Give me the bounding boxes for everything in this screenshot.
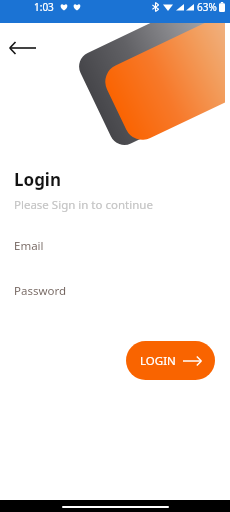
staticText: Password (14, 283, 67, 299)
staticText: 1:03 (34, 0, 54, 14)
button[interactable]: LOGIN (126, 341, 215, 380)
staticText: LOGIN (140, 353, 176, 369)
staticText: Email (14, 238, 44, 254)
staticText: 63% (197, 0, 217, 14)
button[interactable]: Back (4, 30, 40, 66)
staticText: Login (14, 168, 62, 191)
staticText: Please Sign in to continue (14, 197, 153, 213)
